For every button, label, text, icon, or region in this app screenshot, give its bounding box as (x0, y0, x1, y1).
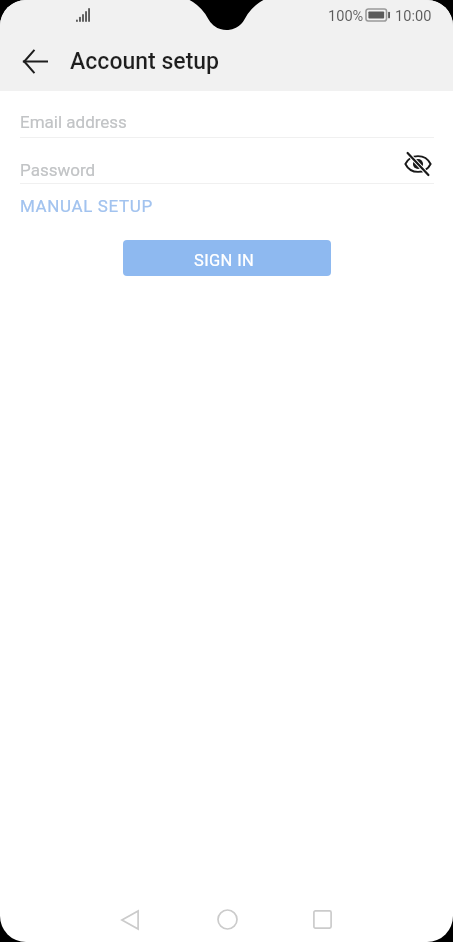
button[interactable]: Show password (399, 145, 437, 183)
staticText: Password (20, 160, 96, 180)
button[interactable]: Home (201, 897, 253, 942)
button[interactable]: MANUAL SETUP (20, 196, 153, 216)
button[interactable]: Back (104, 897, 156, 942)
staticText: Account setup (70, 48, 220, 75)
staticText: 10:00 (395, 7, 432, 24)
button[interactable]: SIGN IN (123, 240, 331, 276)
staticText: 100% (328, 7, 364, 24)
button[interactable]: Email address (0, 91, 453, 137)
button[interactable]: Password (0, 138, 453, 183)
button[interactable]: Navigate up (11, 37, 59, 85)
staticText: SIGN IN (194, 251, 255, 270)
button[interactable]: Recent apps (296, 897, 348, 942)
staticText: Email address (20, 112, 127, 132)
staticText: MANUAL SETUP (20, 196, 153, 216)
